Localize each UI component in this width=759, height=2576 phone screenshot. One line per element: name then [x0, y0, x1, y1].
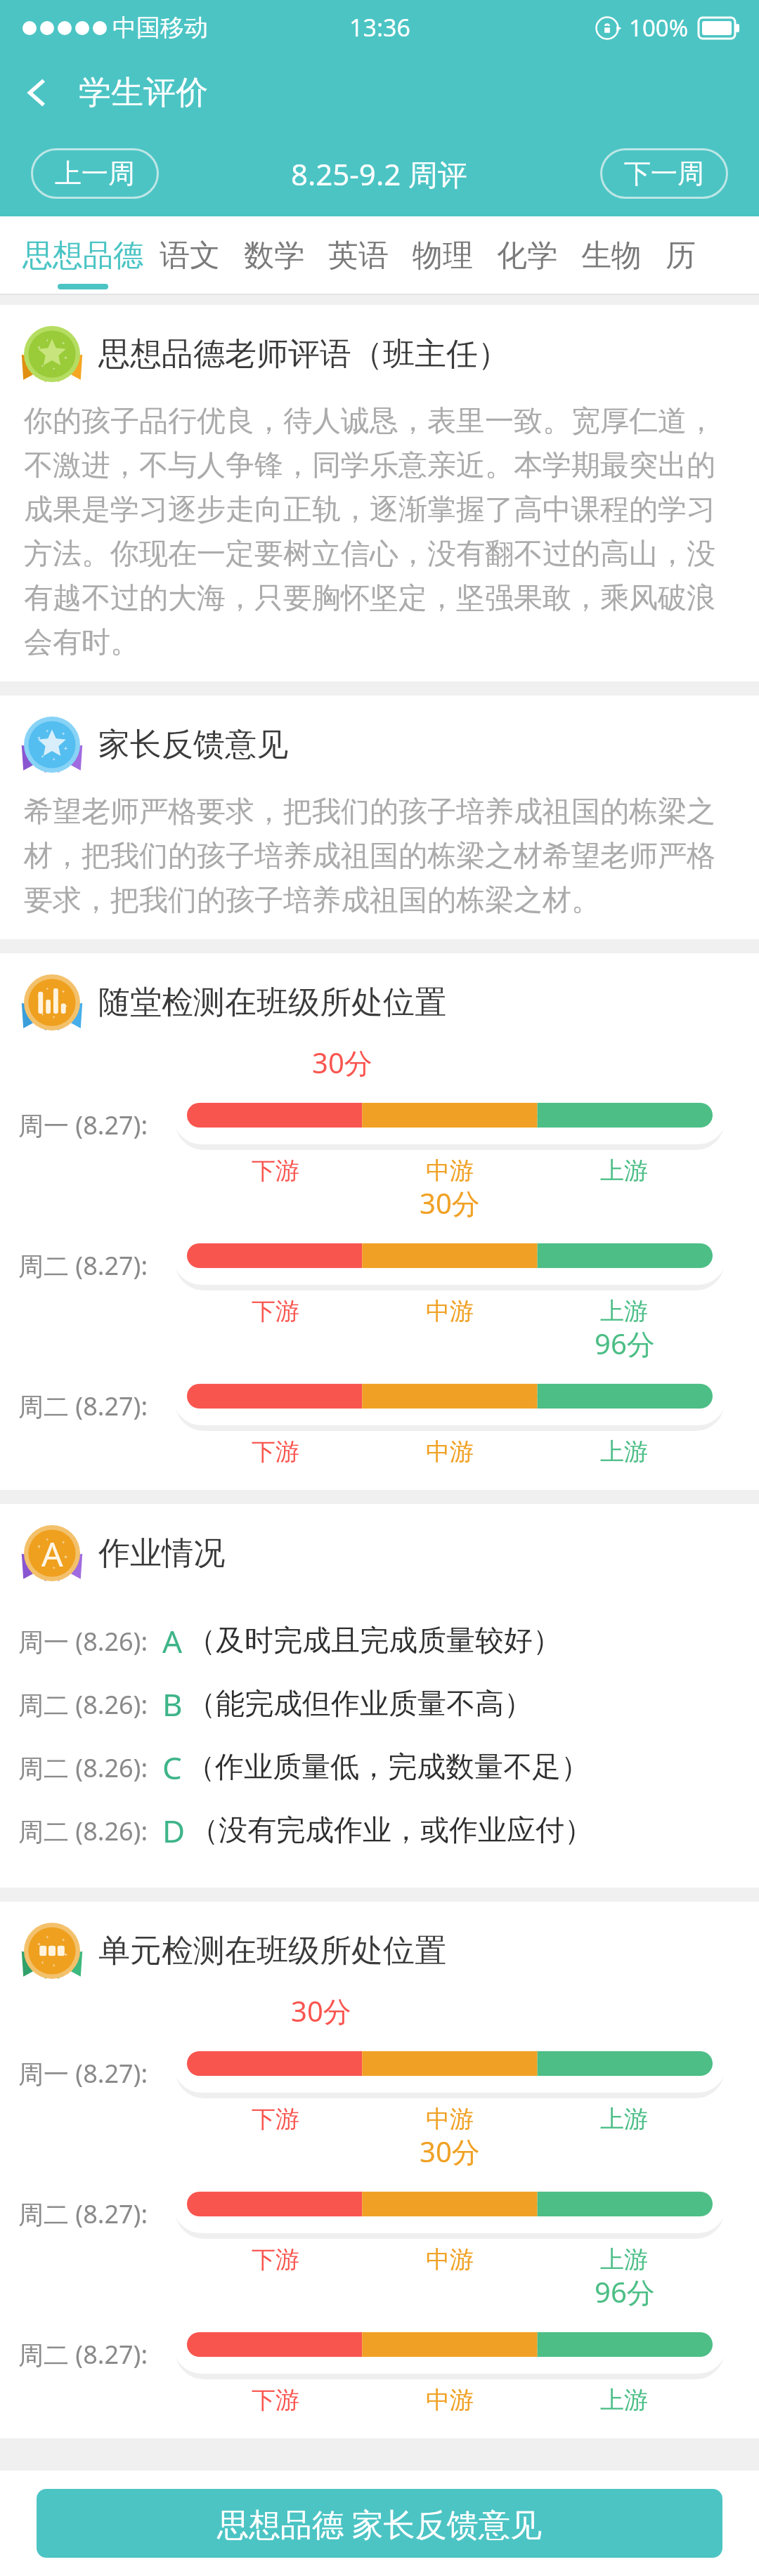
staticText: 上一周: [55, 157, 135, 190]
staticText: 周二 (8.26):: [18, 1751, 148, 1785]
staticText: 化学: [497, 237, 557, 275]
staticText: 物理: [413, 237, 473, 275]
staticText: A: [162, 1620, 183, 1662]
staticText: 周一 (8.27):: [18, 1108, 148, 1142]
staticText: 随堂检测在班级所处位置: [98, 983, 446, 1023]
staticText: 96分: [595, 2273, 655, 2311]
button[interactable]: 生物: [569, 216, 654, 295]
staticText: 周一 (8.26):: [18, 1624, 148, 1659]
staticText: 思想品德: [22, 237, 143, 275]
button[interactable]: 英语: [316, 216, 401, 295]
staticText: 单元检测在班级所处位置: [98, 1931, 446, 1971]
button[interactable]: 下一周: [600, 148, 728, 199]
staticText: 上游: [600, 1437, 648, 1467]
staticText: 上游: [600, 2385, 648, 2415]
staticText: 中国移动: [112, 13, 208, 43]
staticText: 下游: [252, 2385, 299, 2415]
staticText: 思想品德老师评语（班主任）: [98, 334, 510, 374]
staticText: 英语: [328, 237, 389, 275]
staticText: 中游: [426, 1156, 474, 1186]
staticText: D: [162, 1810, 186, 1852]
button[interactable]: 历: [654, 216, 708, 295]
staticText: B: [162, 1683, 183, 1725]
staticText: 中游: [426, 2385, 474, 2415]
button[interactable]: 思想品德老师评语（班主任）: [0, 305, 759, 681]
staticText: 思想品德 家长反馈意见: [217, 2502, 542, 2545]
button[interactable]: 家长反馈意见: [0, 695, 759, 939]
staticText: 周二 (8.27):: [18, 1248, 148, 1283]
staticText: 你的孩子品行优良，待人诚恳，表里一致。宽厚仁道，不激进，不与人争锋，同学乐意亲近…: [24, 403, 735, 660]
staticText: 下一周: [624, 157, 704, 190]
button[interactable]: 数学: [232, 216, 316, 295]
staticText: 中游: [426, 2244, 474, 2275]
button[interactable]: Back: [7, 63, 67, 123]
staticText: 周二 (8.27):: [18, 2337, 148, 2372]
staticText: 希望老师严格要求，把我们的孩子培养成祖国的栋梁之材，把我们的孩子培养成祖国的栋梁…: [24, 794, 735, 918]
staticText: 100%: [629, 12, 689, 44]
staticText: 生物: [581, 237, 642, 275]
staticText: 家长反馈意见: [98, 725, 288, 765]
staticText: 下游: [252, 2244, 299, 2275]
staticText: 下游: [252, 1437, 299, 1467]
staticText: 周一 (8.27):: [18, 2056, 148, 2091]
staticText: 下游: [252, 2104, 299, 2134]
staticText: 30分: [420, 1184, 480, 1222]
staticText: 30分: [312, 1043, 372, 1082]
staticText: 周二 (8.27):: [18, 2197, 148, 2231]
staticText: 历: [666, 237, 696, 275]
staticText: 作业情况: [98, 1534, 225, 1574]
staticText: 周二 (8.26):: [18, 1814, 148, 1848]
staticText: 周二 (8.26):: [18, 1687, 148, 1722]
staticText: A: [41, 1531, 63, 1576]
staticText: 13:36: [349, 11, 410, 44]
staticText: 下游: [252, 1296, 299, 1326]
button[interactable]: 上一周: [31, 148, 159, 199]
button[interactable]: 物理: [401, 216, 485, 295]
staticText: 上游: [600, 1296, 648, 1326]
staticText: 30分: [420, 2132, 480, 2171]
staticText: 上游: [600, 1156, 648, 1186]
staticText: （作业质量低，完成数量不足）: [186, 1749, 590, 1786]
button[interactable]: A: [0, 1504, 759, 1888]
staticText: 语文: [160, 237, 220, 275]
staticText: 8.25-9.2 周评: [291, 154, 468, 194]
staticText: 中游: [426, 1437, 474, 1467]
staticText: 中游: [426, 2104, 474, 2134]
staticText: 上游: [600, 2104, 648, 2134]
button[interactable]: 单元检测在班级所处位置: [0, 1902, 759, 2438]
staticText: （及时完成且完成质量较好）: [187, 1623, 562, 1659]
staticText: 中游: [426, 1296, 474, 1326]
staticText: 周二 (8.27):: [18, 1389, 148, 1423]
staticText: 学生评价: [79, 72, 208, 113]
staticText: （能完成但作业质量不高）: [187, 1686, 533, 1722]
staticText: C: [162, 1746, 182, 1789]
staticText: 96分: [595, 1324, 655, 1363]
staticText: 30分: [291, 1992, 351, 2030]
button[interactable]: 思想品德: [18, 216, 148, 295]
button[interactable]: 思想品德 家长反馈意见: [37, 2489, 722, 2558]
button[interactable]: 随堂检测在班级所处位置: [0, 953, 759, 1490]
staticText: 数学: [244, 237, 304, 275]
staticText: 上游: [600, 2244, 648, 2275]
button[interactable]: 语文: [148, 216, 232, 295]
staticText: （没有完成作业，或作业应付）: [190, 1812, 593, 1849]
staticText: 下游: [252, 1156, 299, 1186]
button[interactable]: 化学: [485, 216, 569, 295]
